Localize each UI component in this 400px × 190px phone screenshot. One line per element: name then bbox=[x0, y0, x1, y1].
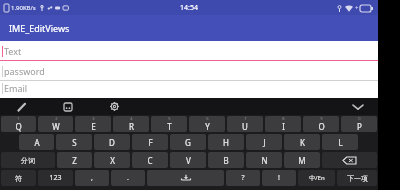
staticText: Q bbox=[15, 121, 22, 132]
staticText: 4 bbox=[130, 116, 133, 121]
staticText: ! bbox=[278, 173, 280, 183]
button[interactable]: F bbox=[132, 134, 168, 150]
button[interactable]: S bbox=[56, 134, 92, 150]
staticText: B bbox=[223, 155, 229, 166]
button[interactable]: 0 bbox=[341, 116, 377, 132]
staticText: D bbox=[109, 137, 115, 148]
button[interactable]: Clipboard bbox=[58, 98, 78, 115]
button[interactable]: L bbox=[322, 134, 358, 150]
button[interactable]: 123 bbox=[38, 170, 73, 186]
staticText: A bbox=[34, 137, 40, 148]
staticText: L bbox=[338, 137, 343, 148]
staticText: 9 bbox=[320, 116, 323, 121]
staticText: 分词 bbox=[21, 156, 35, 165]
button[interactable]: 符 bbox=[1, 170, 36, 186]
staticText: Text bbox=[4, 45, 22, 57]
button[interactable]: X bbox=[94, 152, 130, 168]
staticText: 0 bbox=[358, 116, 361, 121]
staticText: 下一项 bbox=[347, 174, 368, 183]
staticText: T bbox=[167, 121, 172, 132]
button[interactable]: 下一项 bbox=[337, 170, 377, 186]
staticText: Email bbox=[4, 82, 28, 94]
button[interactable]: K bbox=[284, 134, 320, 150]
staticText: 符 bbox=[15, 174, 22, 183]
staticText: K bbox=[300, 137, 305, 148]
staticText: H bbox=[223, 137, 229, 148]
staticText: M bbox=[298, 155, 306, 166]
button[interactable]: Handwriting bbox=[12, 98, 32, 115]
staticText: 中/En bbox=[309, 174, 325, 182]
button[interactable]: 2 bbox=[38, 116, 73, 132]
staticText: P bbox=[357, 121, 362, 132]
button[interactable]: C bbox=[132, 152, 168, 168]
staticText: 1 bbox=[17, 116, 20, 121]
button[interactable]: Z bbox=[57, 152, 92, 168]
staticText: + bbox=[355, 4, 359, 12]
button[interactable]: Backspace bbox=[322, 152, 377, 168]
button[interactable]: V bbox=[170, 152, 206, 168]
button[interactable]: 5 bbox=[151, 116, 187, 132]
button[interactable]: N bbox=[246, 152, 282, 168]
staticText: 3 bbox=[92, 116, 95, 121]
staticText: C bbox=[147, 155, 153, 166]
staticText: 2 bbox=[55, 116, 58, 121]
button[interactable]: M bbox=[284, 152, 320, 168]
button[interactable]: 6 bbox=[189, 116, 225, 132]
button[interactable]: Hide keyboard bbox=[348, 98, 368, 115]
button[interactable]: , bbox=[75, 170, 109, 186]
staticText: 123 bbox=[49, 173, 62, 183]
staticText: 8 bbox=[282, 116, 285, 121]
staticText: W bbox=[52, 121, 60, 132]
staticText: 5 bbox=[168, 116, 171, 121]
button[interactable]: B bbox=[208, 152, 244, 168]
button[interactable]: J bbox=[246, 134, 282, 150]
button[interactable]: 9 bbox=[303, 116, 339, 132]
button[interactable]: Text bbox=[0, 41, 378, 61]
button[interactable]: G bbox=[170, 134, 206, 150]
staticText: password bbox=[4, 65, 45, 77]
button[interactable]: 分词 bbox=[1, 152, 55, 168]
staticText: O bbox=[318, 121, 325, 132]
button[interactable]: H bbox=[208, 134, 244, 150]
button[interactable]: ! bbox=[262, 170, 296, 186]
staticText: E bbox=[91, 121, 96, 132]
staticText: V bbox=[186, 155, 191, 166]
button[interactable]: ? bbox=[226, 170, 260, 186]
staticText: 1.90KB/s bbox=[11, 4, 36, 12]
staticText: Z bbox=[72, 155, 77, 166]
staticText: I bbox=[282, 121, 285, 132]
button[interactable]: IME_EditViews bbox=[0, 15, 378, 41]
button[interactable]: Settings bbox=[104, 98, 124, 115]
staticText: J bbox=[263, 137, 266, 148]
button[interactable]: 中/En bbox=[298, 170, 335, 186]
staticText: 6 bbox=[206, 116, 209, 121]
staticText: 7 bbox=[244, 116, 247, 121]
button[interactable]: 4 bbox=[113, 116, 149, 132]
staticText: X bbox=[110, 155, 115, 166]
staticText: . bbox=[127, 173, 129, 183]
staticText: F bbox=[148, 137, 153, 148]
staticText: N bbox=[261, 155, 268, 166]
button[interactable]: 1 bbox=[1, 116, 36, 132]
button[interactable]: . bbox=[111, 170, 145, 186]
staticText: S bbox=[72, 137, 77, 148]
button[interactable]: D bbox=[94, 134, 130, 150]
staticText: R bbox=[129, 121, 134, 132]
button[interactable]: A bbox=[19, 134, 54, 150]
staticText: ? bbox=[241, 173, 245, 183]
button[interactable]: Email bbox=[0, 81, 378, 98]
staticText: Y bbox=[205, 121, 210, 132]
staticText: IME_EditViews bbox=[9, 22, 70, 34]
button[interactable]: 7 bbox=[227, 116, 263, 132]
staticText: , bbox=[91, 173, 93, 183]
staticText: 14:54 bbox=[180, 3, 198, 13]
staticText: U bbox=[242, 121, 248, 132]
staticText: G bbox=[185, 137, 191, 148]
button[interactable]: 8 bbox=[265, 116, 301, 132]
button[interactable]: password bbox=[0, 61, 378, 81]
button[interactable]: 3 bbox=[75, 116, 111, 132]
button[interactable]: Space bbox=[147, 170, 224, 186]
